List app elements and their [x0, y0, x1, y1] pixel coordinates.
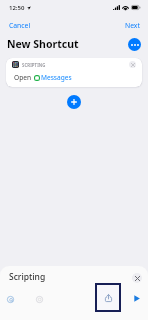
button[interactable]: Variables: [32, 292, 47, 307]
button[interactable]: More options: [128, 38, 141, 51]
staticText: 12:50: [9, 4, 25, 12]
staticText: Next: [125, 21, 140, 29]
button[interactable]: Share: [95, 283, 121, 312]
button[interactable]: Add action: [67, 95, 81, 109]
button[interactable]: Search: [3, 292, 18, 307]
staticText: Open: [14, 73, 31, 82]
button[interactable]: Play: [129, 290, 145, 306]
staticText: Cancel: [9, 21, 31, 29]
button[interactable]: Close: [132, 273, 142, 283]
staticText: Scripting: [9, 271, 46, 283]
staticText: Messages: [41, 73, 72, 82]
button[interactable]: Remove action: [129, 61, 136, 68]
button[interactable]: SCRIPTING: [6, 58, 142, 87]
staticText: SCRIPTING: [22, 62, 46, 68]
button[interactable]: Cancel: [9, 21, 31, 29]
staticText: New Shortcut: [7, 37, 79, 51]
button[interactable]: Next: [125, 21, 140, 29]
